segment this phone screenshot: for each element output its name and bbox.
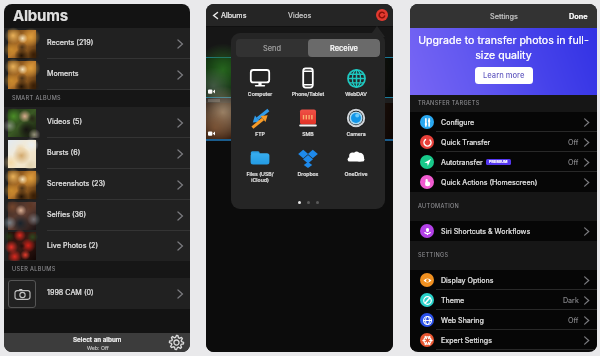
staticText: Receive <box>330 44 358 53</box>
button[interactable]: Moments <box>4 59 190 90</box>
staticText: Moments <box>47 69 175 78</box>
button[interactable]: Siri Shortcuts & Workflows <box>410 221 597 241</box>
button[interactable]: 1998 CAM (0) <box>4 278 190 309</box>
button[interactable]: Camera <box>333 108 379 137</box>
button[interactable]: Computer <box>237 68 283 97</box>
staticText: Phone/Tablet <box>285 91 331 97</box>
button[interactable]: Selfies (36) <box>4 200 190 231</box>
staticText: Dark <box>563 296 579 305</box>
staticText: Off <box>568 138 579 147</box>
button[interactable]: OneDrive <box>333 148 379 177</box>
staticText: Configure <box>441 118 475 127</box>
staticText: Settings <box>490 12 518 21</box>
staticText: Siri Shortcuts & Workflows <box>441 227 531 236</box>
button[interactable]: SMB <box>285 108 331 137</box>
button[interactable]: Learn more <box>475 67 533 84</box>
staticText: Learn more <box>483 71 525 80</box>
staticText: SMB <box>285 131 331 137</box>
staticText: Camera <box>333 131 379 137</box>
staticText: TRANSFER TARGETS <box>418 100 480 107</box>
button[interactable]: Files (USB/ iCloud) <box>237 148 283 183</box>
staticText: PREMIUM <box>489 160 508 164</box>
staticText: Recents (219) <box>47 38 175 47</box>
button[interactable]: Receive <box>308 39 380 57</box>
button[interactable]: Quick Actions (Homescreen) <box>410 172 597 192</box>
staticText: Web: Off <box>87 345 109 351</box>
button[interactable]: Bursts (6) <box>4 138 190 169</box>
button[interactable]: Settings <box>169 335 184 350</box>
staticText: Quick Actions (Homescreen) <box>441 178 538 187</box>
button[interactable]: Phone/Tablet <box>285 68 331 97</box>
staticText: Albums <box>221 11 247 20</box>
staticText: Dropbox <box>285 171 331 177</box>
button[interactable]: Dropbox <box>285 148 331 177</box>
staticText: Web Sharing <box>441 316 484 325</box>
button[interactable]: Autotransfer <box>410 152 597 172</box>
staticText: Send <box>263 44 281 53</box>
staticText: Select an album <box>73 336 122 344</box>
button[interactable]: Theme <box>410 290 597 310</box>
staticText: Videos <box>288 11 312 20</box>
button[interactable]: Display Options <box>410 270 597 290</box>
staticText: FTP <box>237 131 283 137</box>
staticText: Computer <box>237 91 283 97</box>
staticText: Files (USB/ iCloud) <box>237 171 283 183</box>
button[interactable]: FTP <box>237 108 283 137</box>
staticText: Quick Transfer <box>441 138 491 147</box>
button[interactable]: Live Photos (2) <box>4 231 190 261</box>
button[interactable]: Quick Transfer <box>410 132 597 152</box>
button[interactable]: Send <box>236 39 308 57</box>
staticText: Albums <box>13 6 68 24</box>
staticText: Screenshots (23) <box>47 179 175 188</box>
staticText: SETTINGS <box>418 252 449 259</box>
staticText: Off <box>568 158 579 167</box>
button[interactable]: Albums <box>211 11 247 20</box>
button[interactable]: Transfer <box>376 9 388 21</box>
staticText: AUTOMATION <box>418 203 460 210</box>
staticText: OneDrive <box>333 171 379 177</box>
staticText: Off <box>568 316 579 325</box>
staticText: Videos (5) <box>47 117 175 126</box>
staticText: Theme <box>441 296 465 305</box>
staticText: USER ALBUMS <box>12 266 56 273</box>
button[interactable]: WebDAV <box>333 68 379 97</box>
staticText: Upgrade to transfer photos in full- size… <box>410 34 597 61</box>
button[interactable]: Videos (5) <box>4 107 190 138</box>
button[interactable]: Expert Settings <box>410 330 597 350</box>
staticText: Selfies (36) <box>47 210 175 219</box>
staticText: Live Photos (2) <box>47 241 175 250</box>
staticText: SMART ALBUMS <box>12 95 61 102</box>
button[interactable]: Recents (219) <box>4 28 190 59</box>
staticText: Autotransfer <box>441 158 483 167</box>
staticText: Expert Settings <box>441 336 492 345</box>
button[interactable]: Done <box>569 12 588 21</box>
staticText: Bursts (6) <box>47 148 175 157</box>
staticText: Display Options <box>441 276 494 285</box>
staticText: WebDAV <box>333 91 379 97</box>
button[interactable]: Screenshots (23) <box>4 169 190 200</box>
staticText: 1998 CAM (0) <box>47 288 175 297</box>
button[interactable]: Configure <box>410 112 597 132</box>
button[interactable]: Web Sharing <box>410 310 597 330</box>
